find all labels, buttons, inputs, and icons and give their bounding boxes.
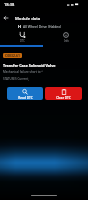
button[interactable]: Info: [44, 31, 88, 42]
staticText: Module data: [15, 16, 41, 22]
staticText: Transfer Case Solenoid Valve: [3, 63, 56, 68]
staticText: Info: [64, 39, 69, 42]
staticText: H: [18, 24, 22, 29]
button[interactable]: Read DTC: [7, 87, 43, 100]
button[interactable]: Back: [1, 13, 10, 22]
staticText: STATUSES Current,: [3, 77, 30, 81]
button[interactable]: Clear DTC: [45, 87, 82, 100]
staticText: Read DTC: [18, 96, 33, 100]
staticText: Mechanical failure short to ^: [3, 70, 44, 74]
staticText: C0032-61: [5, 53, 20, 58]
staticText: 18:38: [4, 2, 15, 7]
staticText: Clear DTC: [56, 96, 71, 100]
button[interactable]: DTC: [0, 31, 44, 42]
staticText: All Wheel Drive (Haldex): [23, 24, 61, 29]
staticText: DTC: [20, 39, 25, 42]
